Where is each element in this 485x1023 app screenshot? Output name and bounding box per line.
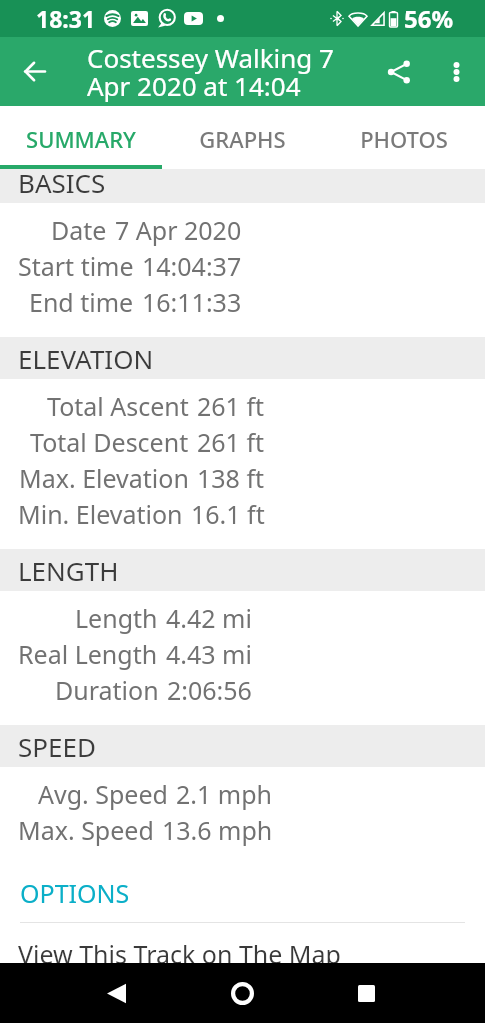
button[interactable]: OPTIONS	[0, 876, 485, 910]
staticText: Min. Elevation	[18, 497, 183, 531]
button[interactable]: Home	[214, 965, 270, 1021]
button[interactable]: Length	[18, 600, 252, 636]
staticText: LENGTH	[18, 553, 119, 588]
staticText: 13.6 mph	[162, 813, 273, 847]
staticText: 4.43 mi	[166, 637, 252, 671]
staticText: SUMMARY	[26, 124, 136, 154]
staticText: SPEED	[18, 729, 96, 764]
staticText: Max. Speed	[18, 813, 154, 847]
staticText: BASICS	[18, 169, 106, 200]
staticText: 14:04:37	[142, 249, 242, 283]
staticText: Date	[51, 213, 107, 247]
button[interactable]: Min. Elevation	[18, 496, 265, 532]
staticText: 56%	[404, 2, 454, 35]
button[interactable]: Max. Elevation	[18, 460, 265, 496]
button[interactable]: SUMMARY	[0, 106, 161, 165]
button[interactable]: PHOTOS	[323, 106, 485, 165]
staticText: 7 Apr 2020	[115, 213, 242, 247]
staticText: 4.42 mi	[166, 601, 252, 635]
staticText: Max. Elevation	[19, 461, 189, 495]
staticText: 2:06:56	[167, 673, 252, 707]
button[interactable]: View This Track on The Map	[0, 937, 485, 963]
staticText: PHOTOS	[360, 124, 448, 154]
button[interactable]: Duration	[18, 672, 252, 708]
staticText: 16:11:33	[142, 285, 242, 319]
staticText: 18:31	[36, 3, 96, 34]
button[interactable]: Max. Speed	[18, 812, 273, 848]
staticText: Avg. Speed	[38, 777, 168, 811]
staticText: OPTIONS	[20, 876, 130, 910]
staticText: GRAPHS	[199, 124, 286, 154]
staticText: Duration	[55, 673, 159, 707]
button[interactable]: Back	[88, 965, 144, 1021]
staticText: 261 ft	[197, 389, 265, 423]
button[interactable]: Avg. Speed	[18, 776, 273, 812]
staticText: Total Ascent	[47, 389, 189, 423]
button[interactable]: GRAPHS	[161, 106, 323, 165]
staticText: 2.1 mph	[176, 777, 273, 811]
button[interactable]: More options	[428, 37, 485, 106]
staticText: Total Descent	[30, 425, 189, 459]
button[interactable]: Total Descent	[18, 424, 265, 460]
button[interactable]: Real Length	[18, 636, 252, 672]
staticText: Real Length	[18, 637, 158, 671]
button[interactable]: Date	[18, 212, 242, 248]
staticText: Start time	[18, 249, 134, 283]
staticText: View This Track on The Map	[18, 937, 341, 963]
button[interactable]: Back	[0, 37, 69, 106]
button[interactable]: Start time	[18, 248, 242, 284]
button[interactable]: Total Ascent	[18, 388, 265, 424]
staticText: Length	[75, 601, 158, 635]
staticText: 261 ft	[197, 425, 265, 459]
button[interactable]: End time	[18, 284, 242, 320]
button[interactable]: Share	[370, 37, 428, 106]
staticText: Costessey Walking 7 Apr 2020 at 14:04	[87, 40, 334, 104]
button[interactable]: Recents	[338, 965, 394, 1021]
staticText: End time	[29, 285, 134, 319]
staticText: 138 ft	[197, 461, 265, 495]
staticText: 16.1 ft	[191, 497, 265, 531]
staticText: ELEVATION	[18, 341, 154, 376]
